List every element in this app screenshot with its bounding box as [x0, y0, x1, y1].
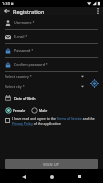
button[interactable]: Male: [31, 107, 48, 114]
button[interactable]: Recent apps: [75, 172, 84, 181]
button[interactable]: Date of Birth: [5, 93, 103, 103]
staticText: Female: [13, 108, 26, 113]
staticText: E-mail *: [14, 34, 28, 39]
staticText: Username *: [14, 20, 35, 25]
staticText: I have read and agree to the Terms of Se…: [12, 116, 95, 126]
staticText: Male: [39, 108, 48, 113]
button[interactable]: E-mail *: [5, 30, 98, 44]
staticText: Select country *: [5, 74, 32, 79]
button[interactable]: I have read and agree to the Terms of Se…: [5, 116, 95, 126]
button[interactable]: Use my location: [89, 78, 99, 88]
staticText: Registration: [13, 8, 45, 15]
staticText: Password *: [14, 48, 34, 53]
staticText: 1:30: [2, 1, 10, 6]
staticText: SIGN UP: [43, 162, 60, 167]
button[interactable]: Back: [2, 7, 11, 15]
button[interactable]: Home: [47, 172, 56, 181]
button[interactable]: Confirm password *: [5, 58, 98, 72]
button[interactable]: SIGN UP: [5, 159, 98, 169]
staticText: Select city *: [5, 84, 25, 89]
button[interactable]: Female: [5, 107, 26, 114]
button[interactable]: Select city *: [5, 82, 100, 91]
button[interactable]: Password *: [5, 44, 98, 58]
staticText: Date of Birth: [14, 96, 36, 101]
staticText: Confirm password *: [14, 62, 48, 67]
button[interactable]: Back: [19, 172, 28, 181]
button[interactable]: Select country *: [5, 72, 100, 81]
button[interactable]: Username *: [5, 16, 98, 30]
button[interactable]: More options: [94, 7, 102, 15]
